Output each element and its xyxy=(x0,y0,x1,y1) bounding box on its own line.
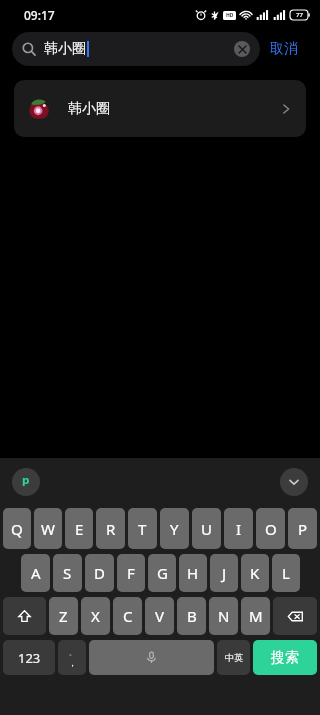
staticText: HD xyxy=(226,12,234,19)
button[interactable]: V xyxy=(145,597,174,635)
button[interactable]: 取消 xyxy=(260,30,308,68)
staticText: ， xyxy=(68,657,77,668)
staticText: T xyxy=(138,519,147,539)
button[interactable]: Input method logo xyxy=(12,468,40,496)
staticText: V xyxy=(155,606,165,626)
staticText: 。 xyxy=(69,648,76,657)
staticText: X xyxy=(91,606,100,626)
button[interactable]: K xyxy=(241,554,269,592)
staticText: B xyxy=(187,606,197,626)
button[interactable]: A xyxy=(21,554,50,592)
button[interactable]: G xyxy=(148,554,176,592)
staticText: S xyxy=(63,563,72,583)
staticText: 取消 xyxy=(270,40,298,58)
staticText: 77 xyxy=(296,11,303,19)
staticText: J xyxy=(222,563,227,583)
button[interactable]: Z xyxy=(49,597,78,635)
button[interactable]: U xyxy=(192,508,221,549)
button[interactable]: M xyxy=(241,597,270,635)
staticText: 韩小圈 xyxy=(44,40,86,58)
button[interactable]: Shift xyxy=(3,597,46,635)
button[interactable]: L xyxy=(272,554,300,592)
button[interactable]: C xyxy=(113,597,142,635)
staticText: 搜索 xyxy=(271,649,299,667)
button[interactable]: 123 xyxy=(3,640,55,675)
staticText: D xyxy=(94,563,105,583)
button[interactable]: S xyxy=(53,554,82,592)
button[interactable]: 韩小圈 xyxy=(12,32,260,66)
staticText: K xyxy=(250,563,260,583)
staticText: N xyxy=(218,606,230,626)
button[interactable]: B xyxy=(177,597,206,635)
staticText: Q xyxy=(11,519,23,539)
staticText: H xyxy=(187,563,199,583)
staticText: M xyxy=(249,606,263,626)
staticText: C xyxy=(123,606,133,626)
button[interactable]: Hide keyboard xyxy=(280,468,308,496)
button[interactable]: T xyxy=(128,508,157,549)
button[interactable]: Y xyxy=(160,508,189,549)
staticText: R xyxy=(106,519,116,539)
staticText: W xyxy=(41,519,55,539)
staticText: F xyxy=(127,563,135,583)
button[interactable]: 。 xyxy=(58,640,86,675)
button[interactable]: Q xyxy=(3,508,31,549)
button[interactable]: I xyxy=(224,508,253,549)
staticText: U xyxy=(201,519,212,539)
button[interactable]: H xyxy=(179,554,207,592)
button[interactable]: Backspace xyxy=(273,597,317,635)
staticText: E xyxy=(75,519,84,539)
staticText: A xyxy=(31,563,41,583)
button[interactable]: Space xyxy=(89,640,214,675)
button[interactable]: N xyxy=(209,597,238,635)
staticText: G xyxy=(157,563,168,583)
button[interactable]: E xyxy=(65,508,93,549)
button[interactable]: D xyxy=(85,554,114,592)
staticText: Z xyxy=(59,606,68,626)
button[interactable]: X xyxy=(81,597,110,635)
staticText: I xyxy=(236,519,242,539)
staticText: O xyxy=(265,519,277,539)
staticText: P xyxy=(298,519,308,539)
button[interactable]: R xyxy=(96,508,125,549)
button[interactable]: O xyxy=(256,508,285,549)
button[interactable]: P xyxy=(288,508,317,549)
button[interactable]: Chinese English toggle xyxy=(217,640,250,675)
staticText: 韩小圈 xyxy=(68,100,110,118)
button[interactable]: 搜索 xyxy=(253,640,317,675)
button[interactable]: W xyxy=(34,508,62,549)
button[interactable]: J xyxy=(210,554,238,592)
button[interactable]: Clear xyxy=(234,41,250,57)
staticText: Y xyxy=(170,519,179,539)
staticText: 中英 xyxy=(225,652,243,663)
button[interactable]: F xyxy=(117,554,145,592)
staticText: 09:17 xyxy=(24,7,55,23)
staticText: ᵖ xyxy=(22,470,30,495)
staticText: L xyxy=(282,563,290,583)
staticText: 123 xyxy=(18,649,41,667)
button[interactable]: 韩小圈 xyxy=(14,80,306,137)
